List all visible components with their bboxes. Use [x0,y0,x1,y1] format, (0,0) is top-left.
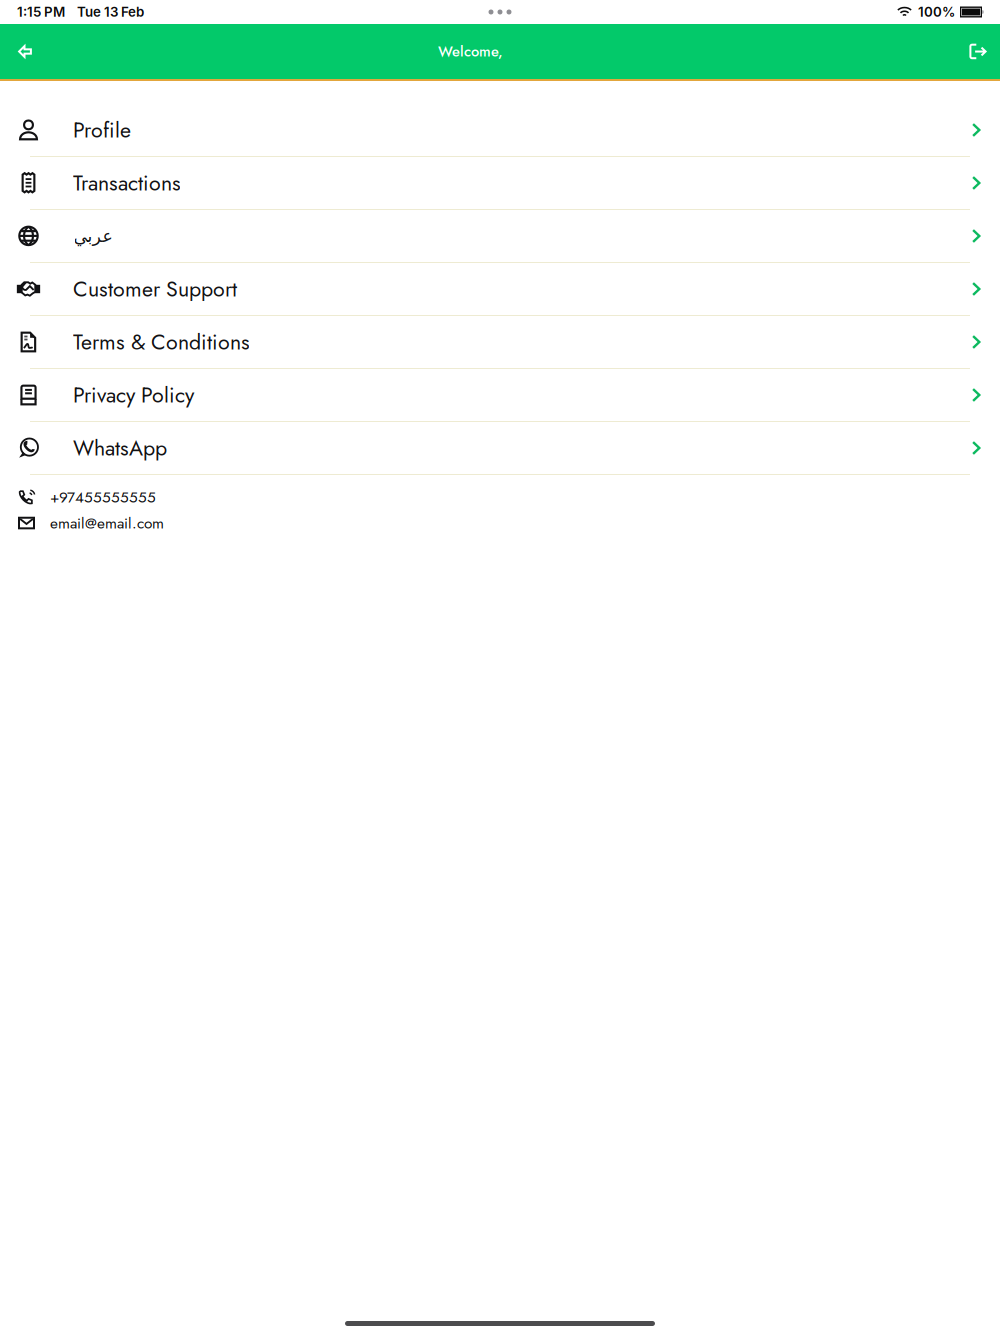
button[interactable]: Transactions [0,157,1000,210]
button[interactable]: Customer Support [0,263,1000,316]
staticText: Terms & Conditions [73,327,250,357]
button[interactable]: +97455555555 [18,486,1000,508]
staticText: +97455555555 [50,486,156,508]
button[interactable]: Privacy Policy [0,369,1000,422]
staticText: 100% [918,4,955,20]
staticText: Transactions [73,168,181,198]
button[interactable]: Profile [0,81,1000,157]
button[interactable]: Back [0,25,50,77]
staticText: Tue 13 Feb [77,4,144,20]
staticText: 1:15 PM [17,4,65,20]
staticText: عربي [73,226,112,246]
button[interactable]: عربي [0,210,1000,263]
button[interactable]: Log out [956,25,1000,77]
staticText: WhatsApp [73,433,167,463]
staticText: Welcome, [438,41,503,62]
staticText: Privacy Policy [73,380,194,410]
staticText: Profile [73,115,131,145]
button[interactable]: Terms & Conditions [0,316,1000,369]
staticText: email@email.com [50,512,164,534]
button[interactable]: WhatsApp [0,422,1000,475]
staticText: Customer Support [73,274,237,304]
button[interactable]: email@email.com [18,512,1000,534]
